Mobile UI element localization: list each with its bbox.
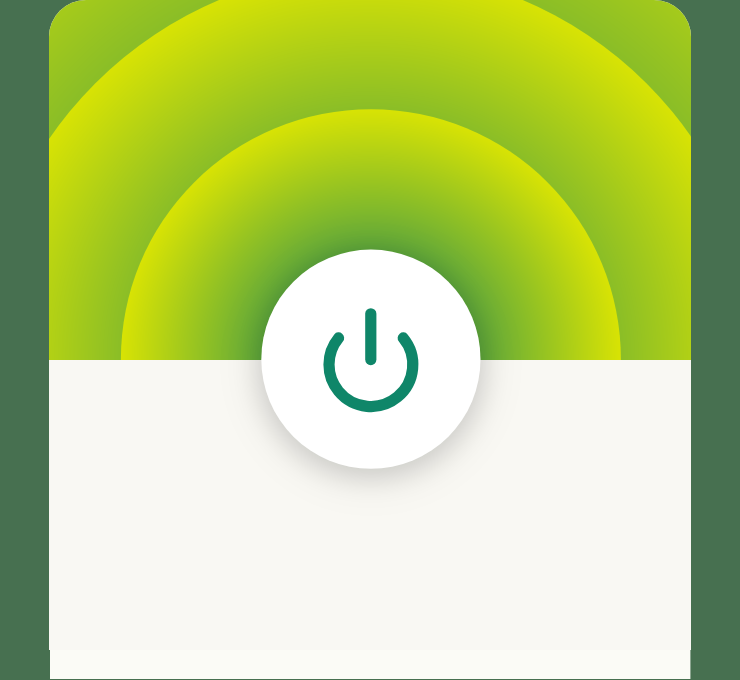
button[interactable]: Power <box>261 250 480 469</box>
